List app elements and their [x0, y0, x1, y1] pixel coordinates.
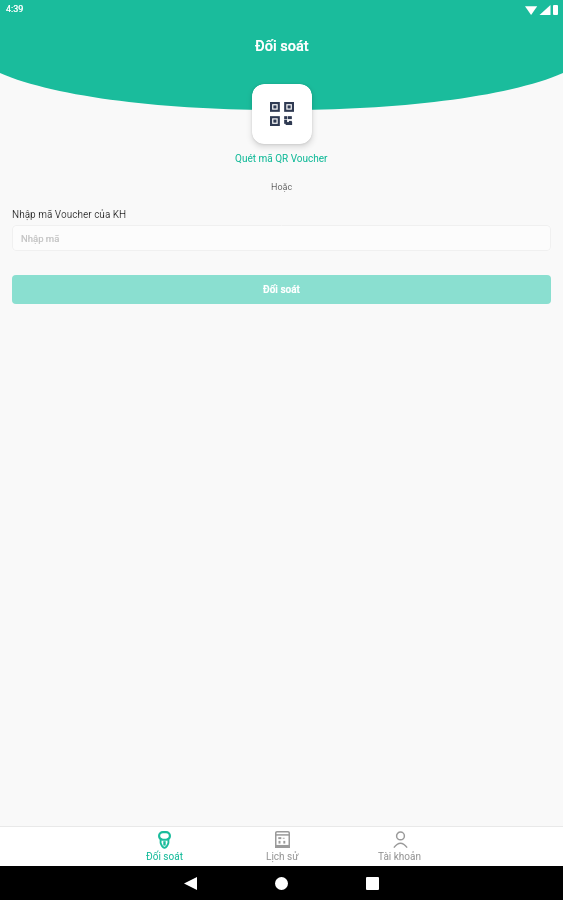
- staticText: Quét mã QR Voucher: [235, 153, 328, 165]
- other: Back: [184, 877, 197, 890]
- staticText: Lịch sử: [266, 851, 299, 863]
- staticText: 4:39: [6, 4, 24, 15]
- button[interactable]: Nhập mã: [12, 225, 551, 251]
- staticText: Đối soát: [146, 851, 183, 863]
- staticText: Đối soát: [263, 284, 300, 296]
- staticText: Đối soát: [255, 38, 309, 55]
- staticText: Tài khoản: [378, 851, 422, 863]
- button[interactable]: Tài khoản: [341, 827, 459, 866]
- other: Home: [275, 877, 288, 890]
- staticText: Nhập mã: [21, 233, 60, 244]
- other: Recents: [366, 877, 379, 890]
- button[interactable]: Lịch sử: [223, 827, 341, 866]
- button[interactable]: Đối soát: [12, 275, 551, 304]
- staticText: Hoặc: [271, 182, 293, 193]
- button[interactable]: Đối soát: [105, 827, 223, 866]
- button[interactable]: Quét mã QR Voucher: [252, 84, 312, 144]
- staticText: Nhập mã Voucher của KH: [12, 209, 127, 221]
